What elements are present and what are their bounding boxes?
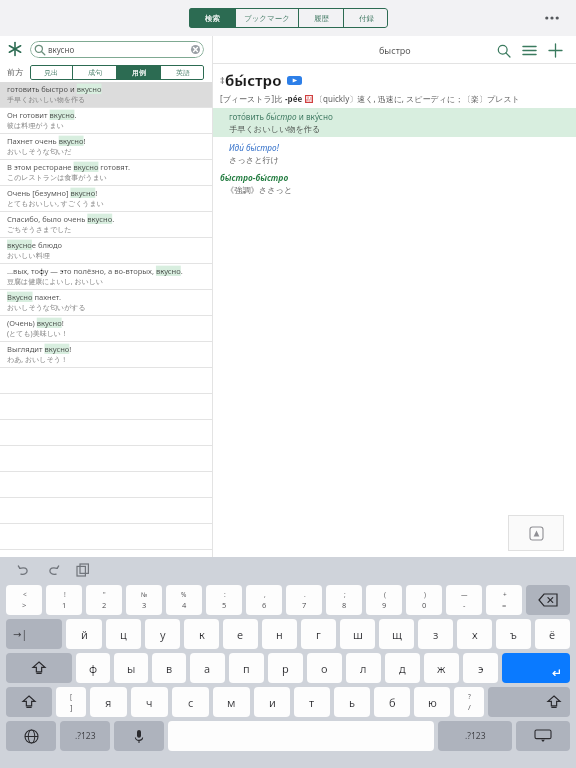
staticText: おいしい料理 [7, 251, 205, 260]
staticText: ц [120, 627, 127, 642]
button[interactable]: о [307, 653, 342, 683]
staticText: ё [549, 627, 556, 642]
button[interactable]: В этом ресторане вкусно готовят. [0, 160, 212, 185]
button[interactable]: с [172, 687, 209, 717]
button[interactable]: бы́стро-бы́стро [213, 172, 576, 195]
button[interactable]: щ [379, 619, 414, 649]
button[interactable]: — [446, 585, 482, 615]
button[interactable]: Очень [безумно] вкусно! [0, 186, 212, 211]
button[interactable]: Options [0, 36, 30, 62]
button[interactable]: ч [131, 687, 168, 717]
button[interactable]: < [6, 585, 42, 615]
button[interactable]: б [374, 687, 410, 717]
button[interactable]: 付録 [344, 8, 388, 28]
button[interactable]: ъ [496, 619, 531, 649]
button[interactable]: Shift [488, 687, 570, 717]
button[interactable]: и [254, 687, 290, 717]
button[interactable]: ; [326, 585, 362, 615]
button[interactable]: " [86, 585, 122, 615]
button[interactable]: н [262, 619, 297, 649]
button[interactable]: 見出 [30, 65, 72, 80]
button[interactable]: Share [508, 515, 564, 551]
button[interactable]: ( [366, 585, 402, 615]
button[interactable]: ц [106, 619, 141, 649]
button[interactable]: Shift [6, 653, 72, 683]
button[interactable]: ь [334, 687, 370, 717]
button[interactable]: Shift [6, 687, 52, 717]
button[interactable]: Выглядит вкусно! [0, 342, 212, 367]
button[interactable]: р [268, 653, 303, 683]
button[interactable]: ю [414, 687, 450, 717]
button[interactable]: Menu [516, 37, 542, 63]
button[interactable]: п [229, 653, 264, 683]
button[interactable]: гото́вить бы́стро и вку́сно [213, 108, 576, 137]
button[interactable]: й [66, 619, 102, 649]
button[interactable]: в [152, 653, 186, 683]
button[interactable]: № [126, 585, 162, 615]
button[interactable]: + [486, 585, 522, 615]
button[interactable]: Hide keyboard [516, 721, 570, 751]
button[interactable]: Вкусно пахнет. [0, 290, 212, 315]
button[interactable]: ы [114, 653, 148, 683]
button[interactable]: ? [454, 687, 484, 717]
button[interactable]: . [286, 585, 322, 615]
staticText: 手早くおいしい物を作る [229, 124, 321, 134]
button[interactable]: м [213, 687, 250, 717]
button[interactable]: , [246, 585, 282, 615]
button[interactable]: ф [76, 653, 110, 683]
button[interactable]: у [145, 619, 180, 649]
button[interactable]: ) [406, 585, 442, 615]
button[interactable]: з [418, 619, 453, 649]
button[interactable]: % [166, 585, 202, 615]
button[interactable]: ブックマーク [236, 8, 298, 28]
button[interactable]: .?123 [60, 721, 110, 751]
button[interactable]: Return [502, 653, 570, 683]
button[interactable]: Paste [72, 559, 94, 581]
button[interactable]: т [294, 687, 330, 717]
button[interactable]: д [385, 653, 420, 683]
button[interactable]: Tab [6, 619, 62, 649]
button[interactable]: а [190, 653, 225, 683]
button[interactable]: ш [340, 619, 375, 649]
button[interactable]: Backspace [526, 585, 570, 615]
button[interactable]: .?123 [438, 721, 512, 751]
button[interactable]: ! [46, 585, 82, 615]
button[interactable]: ж [424, 653, 459, 683]
button[interactable]: Иди́ бы́стро! [213, 142, 576, 165]
button[interactable]: Пахнет очень вкусно! [0, 134, 212, 159]
button[interactable]: Dictation [114, 721, 164, 751]
button[interactable]: Он готовит вкусно. [0, 108, 212, 133]
button[interactable]: л [346, 653, 381, 683]
button[interactable]: э [463, 653, 498, 683]
button[interactable]: я [90, 687, 127, 717]
button[interactable]: х [457, 619, 492, 649]
button[interactable]: 履歴 [299, 8, 343, 28]
button[interactable]: [ [56, 687, 86, 717]
button[interactable]: к [184, 619, 219, 649]
button[interactable]: (Очень) вкусно! [0, 316, 212, 341]
staticText: (Очень) вкусно! [7, 318, 205, 328]
button[interactable]: Redo [42, 559, 64, 581]
button[interactable]: Спасибо, было очень вкусно. [0, 212, 212, 237]
button[interactable]: е [223, 619, 258, 649]
button[interactable]: 英語 [161, 65, 204, 80]
button[interactable]: 成句 [73, 65, 116, 80]
staticText: 2 [102, 600, 107, 610]
button[interactable]: 検索 [189, 8, 235, 28]
button[interactable]: г [301, 619, 336, 649]
button[interactable]: 用例 [117, 65, 160, 80]
button[interactable]: вкусное блюдо [0, 238, 212, 263]
button[interactable]: Undo [12, 559, 34, 581]
button[interactable]: Search [490, 37, 516, 63]
button[interactable]: готовить быстро и вкусно [0, 82, 212, 107]
staticText: Очень [безумно] вкусно! [7, 188, 205, 198]
button[interactable]: Add [542, 37, 568, 63]
button[interactable]: ...вых, тофу — это полёзно, а во-вторых,… [0, 264, 212, 289]
staticText: Он готовит вкусно. [7, 110, 205, 120]
button[interactable]: вкусно [30, 41, 204, 58]
button[interactable]: : [206, 585, 242, 615]
button[interactable]: Change language [6, 721, 56, 751]
button[interactable]: ё [535, 619, 570, 649]
button[interactable]: More options [538, 4, 566, 32]
